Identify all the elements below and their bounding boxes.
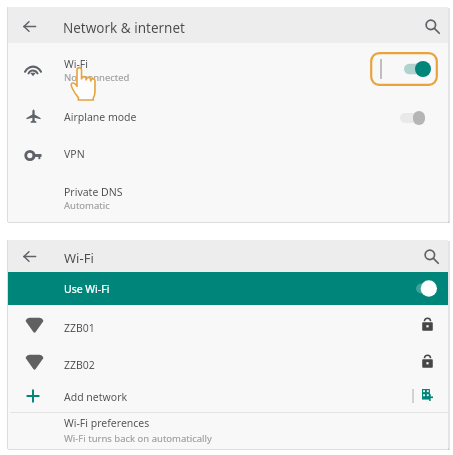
button[interactable]: Wi-Fi bbox=[8, 50, 448, 88]
button[interactable]: Search bbox=[419, 13, 445, 39]
button[interactable]: Search bbox=[419, 244, 443, 268]
staticText: Network & internet bbox=[63, 19, 185, 37]
button[interactable]: Wi-Fi preferences bbox=[8, 413, 448, 449]
button[interactable]: Scan QR code bbox=[418, 386, 436, 404]
button[interactable]: Use Wi-Fi bbox=[8, 272, 448, 305]
button[interactable]: VPN bbox=[8, 138, 448, 172]
staticText: Wi-Fi bbox=[64, 249, 94, 267]
button[interactable]: Private DNS bbox=[8, 177, 448, 217]
staticText: Wi-Fi bbox=[64, 57, 89, 71]
staticText: Use Wi-Fi bbox=[64, 282, 110, 296]
staticText: Add network bbox=[64, 390, 128, 404]
button[interactable]: ZZB01 bbox=[8, 310, 448, 346]
button[interactable]: Airplane mode toggle bbox=[400, 111, 425, 125]
button[interactable]: Back bbox=[16, 13, 42, 39]
button[interactable]: Wi-Fi toggle bbox=[370, 52, 438, 86]
staticText: ZZB01 bbox=[64, 321, 95, 335]
staticText: Wi-Fi turns back on automatically bbox=[64, 432, 212, 445]
button[interactable]: Airplane mode bbox=[8, 100, 448, 136]
button[interactable]: Add network bbox=[8, 381, 448, 411]
staticText: VPN bbox=[64, 147, 85, 161]
staticText: Automatic bbox=[64, 199, 110, 212]
staticText: ZZB02 bbox=[64, 358, 95, 372]
staticText: Private DNS bbox=[64, 185, 123, 199]
button[interactable]: ZZB02 bbox=[8, 347, 448, 383]
button[interactable]: Back bbox=[17, 244, 41, 268]
staticText: Not connected bbox=[64, 71, 130, 84]
staticText: Wi-Fi preferences bbox=[64, 416, 150, 430]
staticText: Airplane mode bbox=[64, 110, 137, 124]
